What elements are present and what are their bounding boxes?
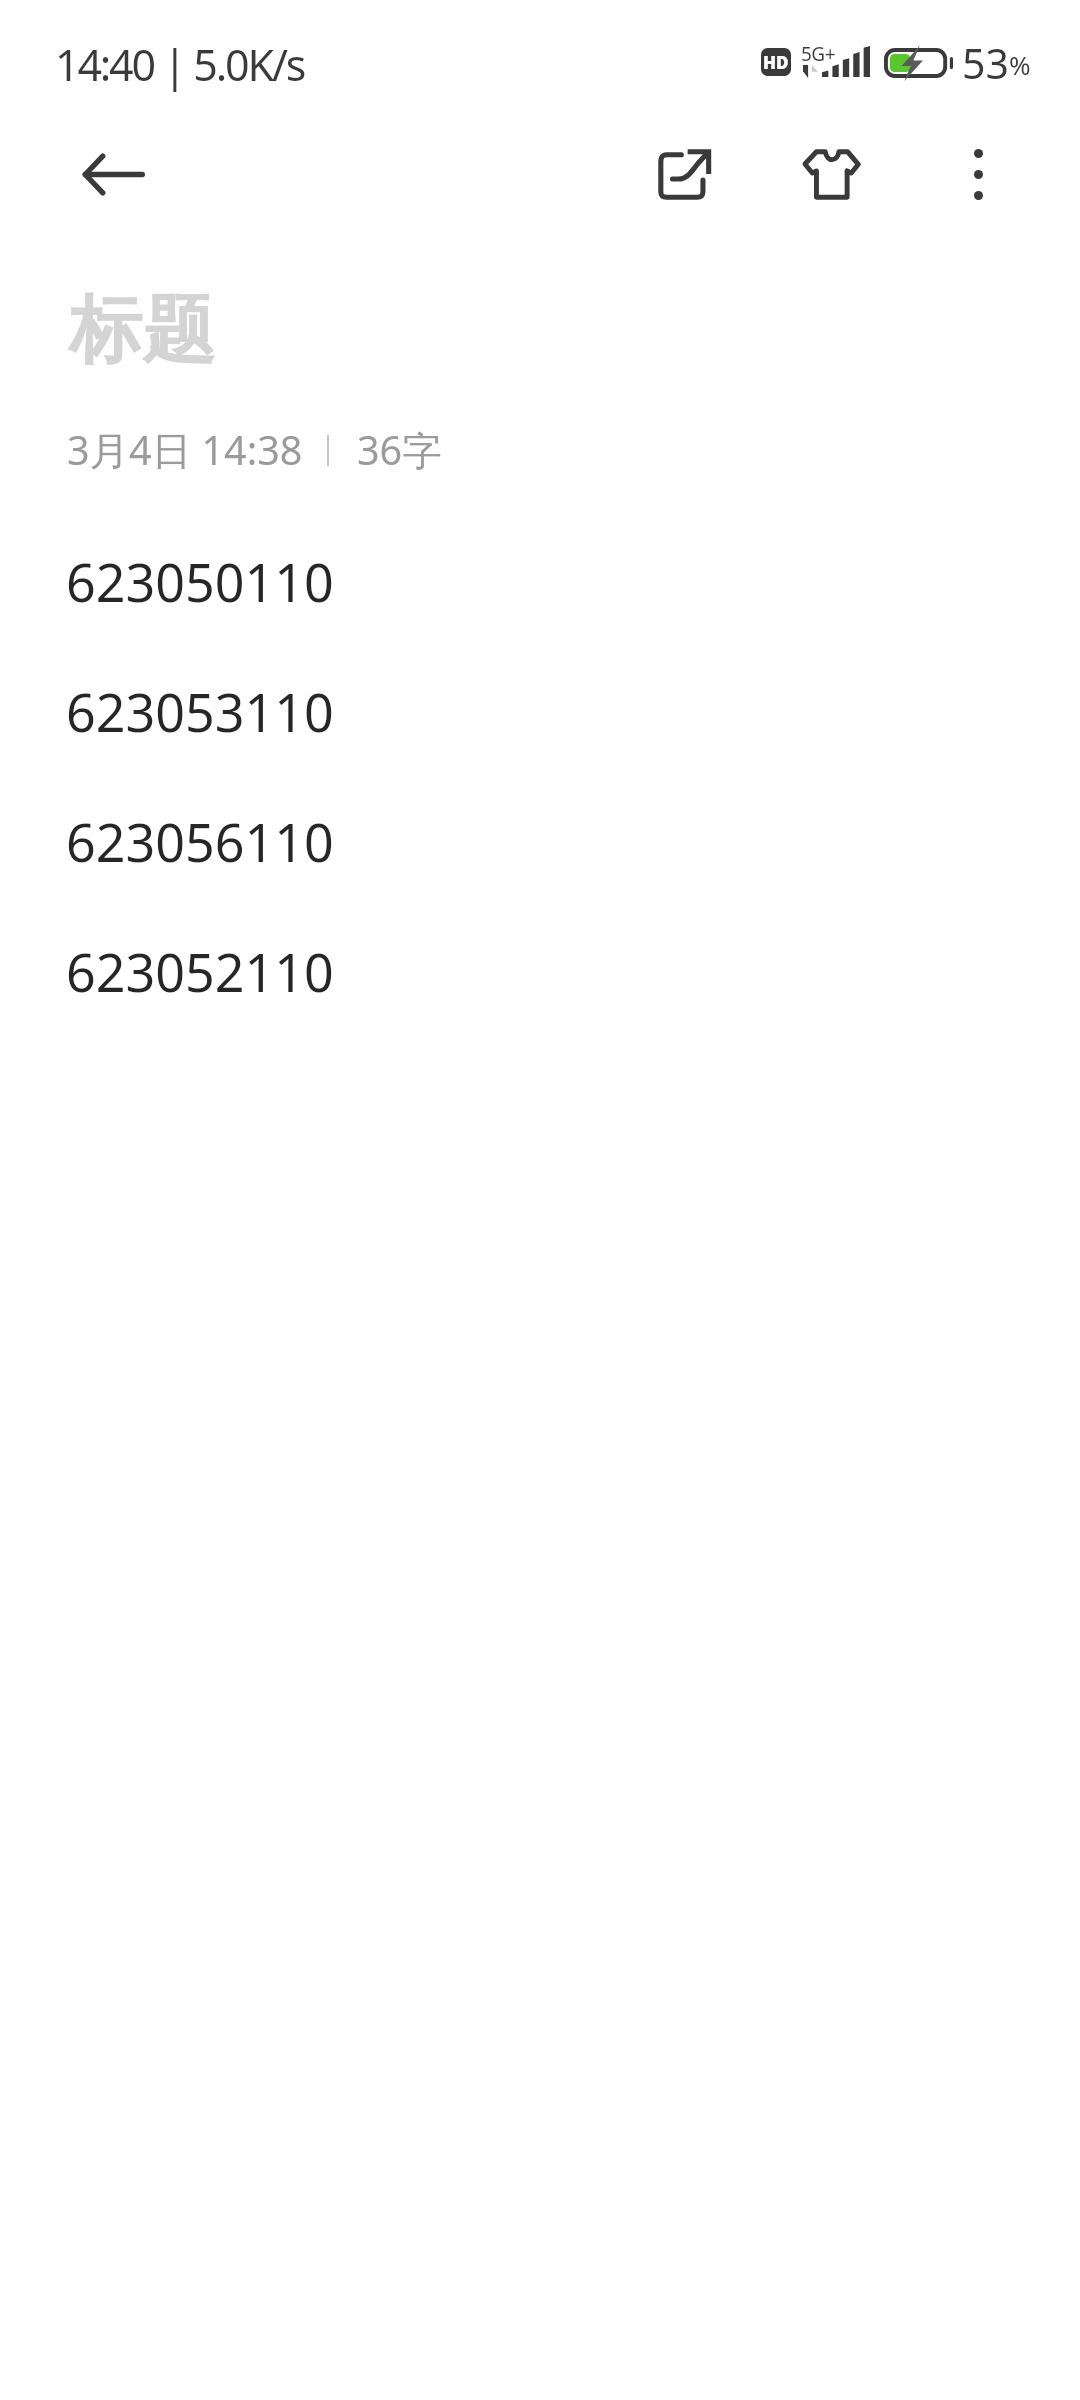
button[interactable]: Theme — [772, 115, 890, 233]
staticText: HD — [763, 51, 789, 74]
button[interactable]: 标题 — [0, 285, 1080, 377]
staticText: 标题 — [69, 285, 215, 377]
button[interactable]: More options — [919, 115, 1037, 233]
staticText: 3月4日 14:38 — [67, 423, 303, 477]
staticText: 623052110 — [66, 936, 334, 1066]
button[interactable]: Back — [54, 115, 172, 233]
staticText: 623050110 — [66, 546, 334, 676]
staticText: 623053110 — [66, 676, 334, 806]
staticText: 623056110 — [66, 806, 334, 936]
staticText: % — [1009, 47, 1031, 82]
staticText: 5G+ — [801, 41, 836, 67]
button[interactable]: Share — [626, 115, 744, 233]
staticText: 14:40 | 5.0K/s — [55, 35, 305, 94]
button[interactable]: 623050110 — [0, 546, 1080, 1466]
staticText: 36字 — [357, 423, 442, 477]
staticText: 53 — [962, 35, 1009, 91]
